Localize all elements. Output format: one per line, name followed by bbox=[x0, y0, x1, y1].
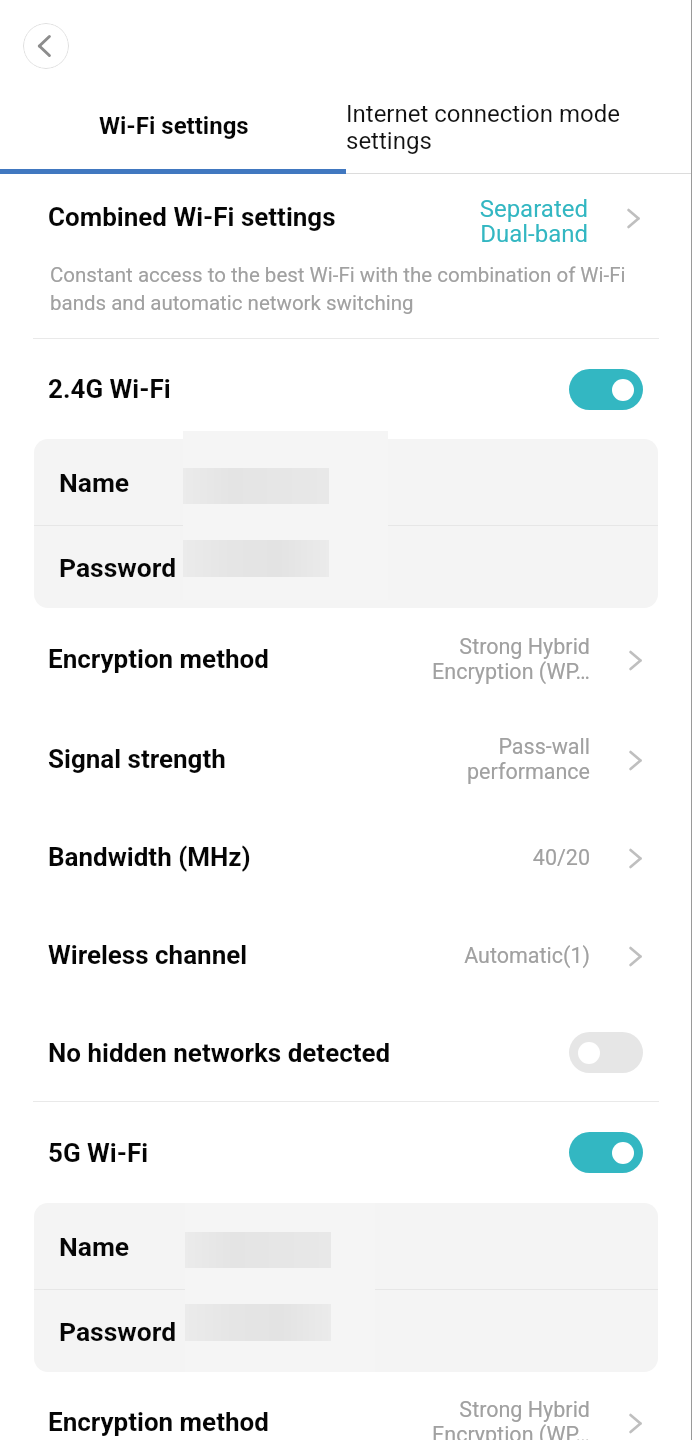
button[interactable]: Combined Wi-Fi settings bbox=[0, 174, 692, 338]
button[interactable]: Signal strength bbox=[0, 710, 692, 808]
button[interactable]: Wireless channel bbox=[0, 906, 692, 1004]
button[interactable] bbox=[0, 88, 346, 174]
button[interactable]: Turn off bbox=[569, 369, 643, 410]
staticText: Strong Hybrid Encryption (WP… bbox=[380, 1397, 590, 1440]
button[interactable]: Encryption method bbox=[0, 1388, 692, 1440]
staticText: 5G Wi-Fi bbox=[48, 1138, 149, 1168]
staticText: No hidden networks detected bbox=[48, 1038, 391, 1068]
staticText: Pass-wall performance bbox=[380, 734, 590, 784]
button[interactable]: Name bbox=[34, 439, 658, 525]
staticText: Password bbox=[59, 552, 177, 583]
staticText: Separated Dual-band bbox=[420, 195, 588, 248]
staticText: 2.4G Wi-Fi bbox=[48, 374, 171, 404]
staticText: Combined Wi-Fi settings bbox=[48, 202, 336, 232]
staticText: Password bbox=[59, 1316, 177, 1347]
staticText: Encryption method bbox=[48, 644, 269, 674]
button[interactable] bbox=[346, 88, 692, 174]
staticText: Encryption method bbox=[48, 1407, 269, 1437]
staticText: Automatic(1) bbox=[380, 943, 590, 968]
button[interactable]: Bandwidth (MHz) bbox=[0, 808, 692, 906]
staticText: Signal strength bbox=[48, 744, 226, 774]
staticText: Bandwidth (MHz) bbox=[48, 842, 251, 872]
staticText: Name bbox=[59, 1231, 130, 1262]
staticText: Wi-Fi settings bbox=[99, 112, 249, 140]
staticText: Strong Hybrid Encryption (WP… bbox=[380, 634, 590, 684]
staticText: Wireless channel bbox=[48, 940, 248, 970]
button[interactable]: Name bbox=[34, 1203, 658, 1289]
button[interactable]: Turn on bbox=[569, 1032, 643, 1073]
staticText: 40/20 bbox=[380, 845, 590, 870]
staticText: Internet connection mode settings bbox=[346, 100, 636, 155]
staticText: Constant access to the best Wi-Fi with t… bbox=[50, 263, 626, 315]
button[interactable]: Back bbox=[23, 23, 69, 69]
button[interactable]: Encryption method bbox=[0, 608, 692, 710]
button[interactable]: Password bbox=[34, 1290, 658, 1372]
staticText: Name bbox=[59, 467, 130, 498]
button[interactable]: Turn off bbox=[569, 1132, 643, 1173]
button[interactable] bbox=[0, 88, 346, 174]
button[interactable]: Password bbox=[34, 526, 658, 608]
